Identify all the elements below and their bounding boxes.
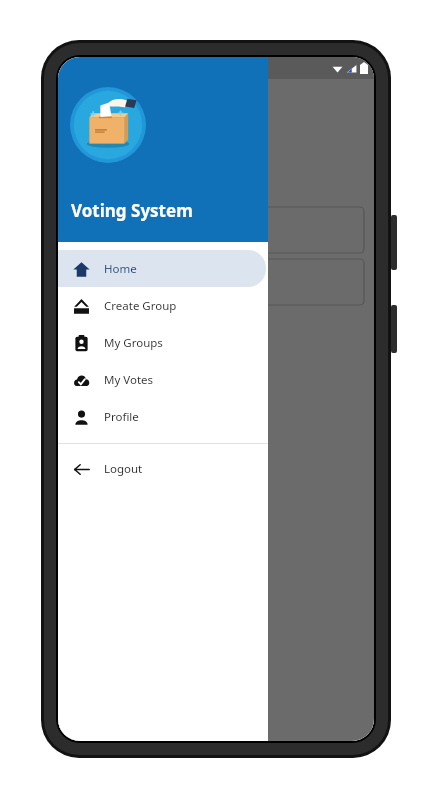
staticText: Voting System	[71, 199, 193, 222]
button[interactable]: Profile	[58, 398, 266, 435]
staticText: 11:24	[65, 61, 91, 75]
staticText: Logout	[104, 461, 143, 477]
staticText: Profile	[104, 409, 139, 425]
staticText: Create Group	[104, 298, 177, 314]
button[interactable]: My Groups	[58, 324, 266, 361]
button[interactable]: Create Group	[58, 287, 266, 324]
staticText: My Votes	[104, 372, 154, 388]
staticText: My Groups	[104, 335, 163, 351]
staticText: Home	[104, 261, 137, 277]
button[interactable]: Logout	[58, 450, 266, 487]
button[interactable]: My Votes	[58, 361, 266, 398]
button[interactable]: Home	[58, 250, 266, 287]
